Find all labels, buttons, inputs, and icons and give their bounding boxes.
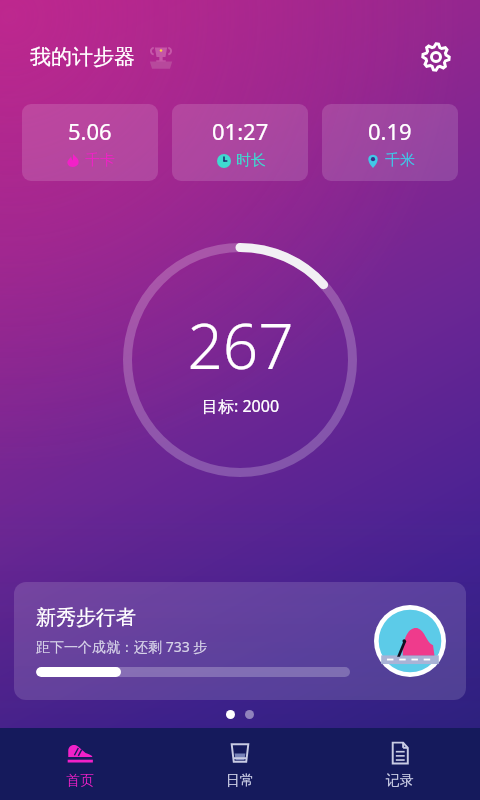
staticText: 记录 (386, 772, 414, 790)
staticText: 5.06 (68, 116, 112, 146)
staticText: 新秀步行者 (36, 605, 136, 630)
staticText: 千卡 (85, 151, 115, 170)
staticText: 日常 (226, 772, 254, 790)
staticText: 距下一个成就：还剩 733 步 (36, 637, 208, 656)
button[interactable]: 0.19 (322, 104, 458, 181)
button[interactable]: 01:27 (172, 104, 308, 181)
staticText: 千米 (385, 151, 415, 170)
staticText: 我的计步器 (30, 44, 135, 70)
staticText: 267 (187, 303, 294, 387)
button[interactable]: 日常 (160, 728, 320, 800)
button[interactable]: 新秀步行者 (14, 582, 466, 700)
button[interactable]: 5.06 (22, 104, 158, 181)
button[interactable]: 记录 (320, 728, 480, 800)
staticText: 目标: 2000 (202, 395, 280, 417)
staticText: 0.19 (368, 116, 412, 146)
button[interactable]: 首页 (0, 728, 160, 800)
staticText: 时长 (236, 151, 266, 170)
staticText: 01:27 (212, 116, 269, 146)
staticText: 首页 (66, 772, 94, 790)
button[interactable]: Settings (414, 35, 458, 79)
